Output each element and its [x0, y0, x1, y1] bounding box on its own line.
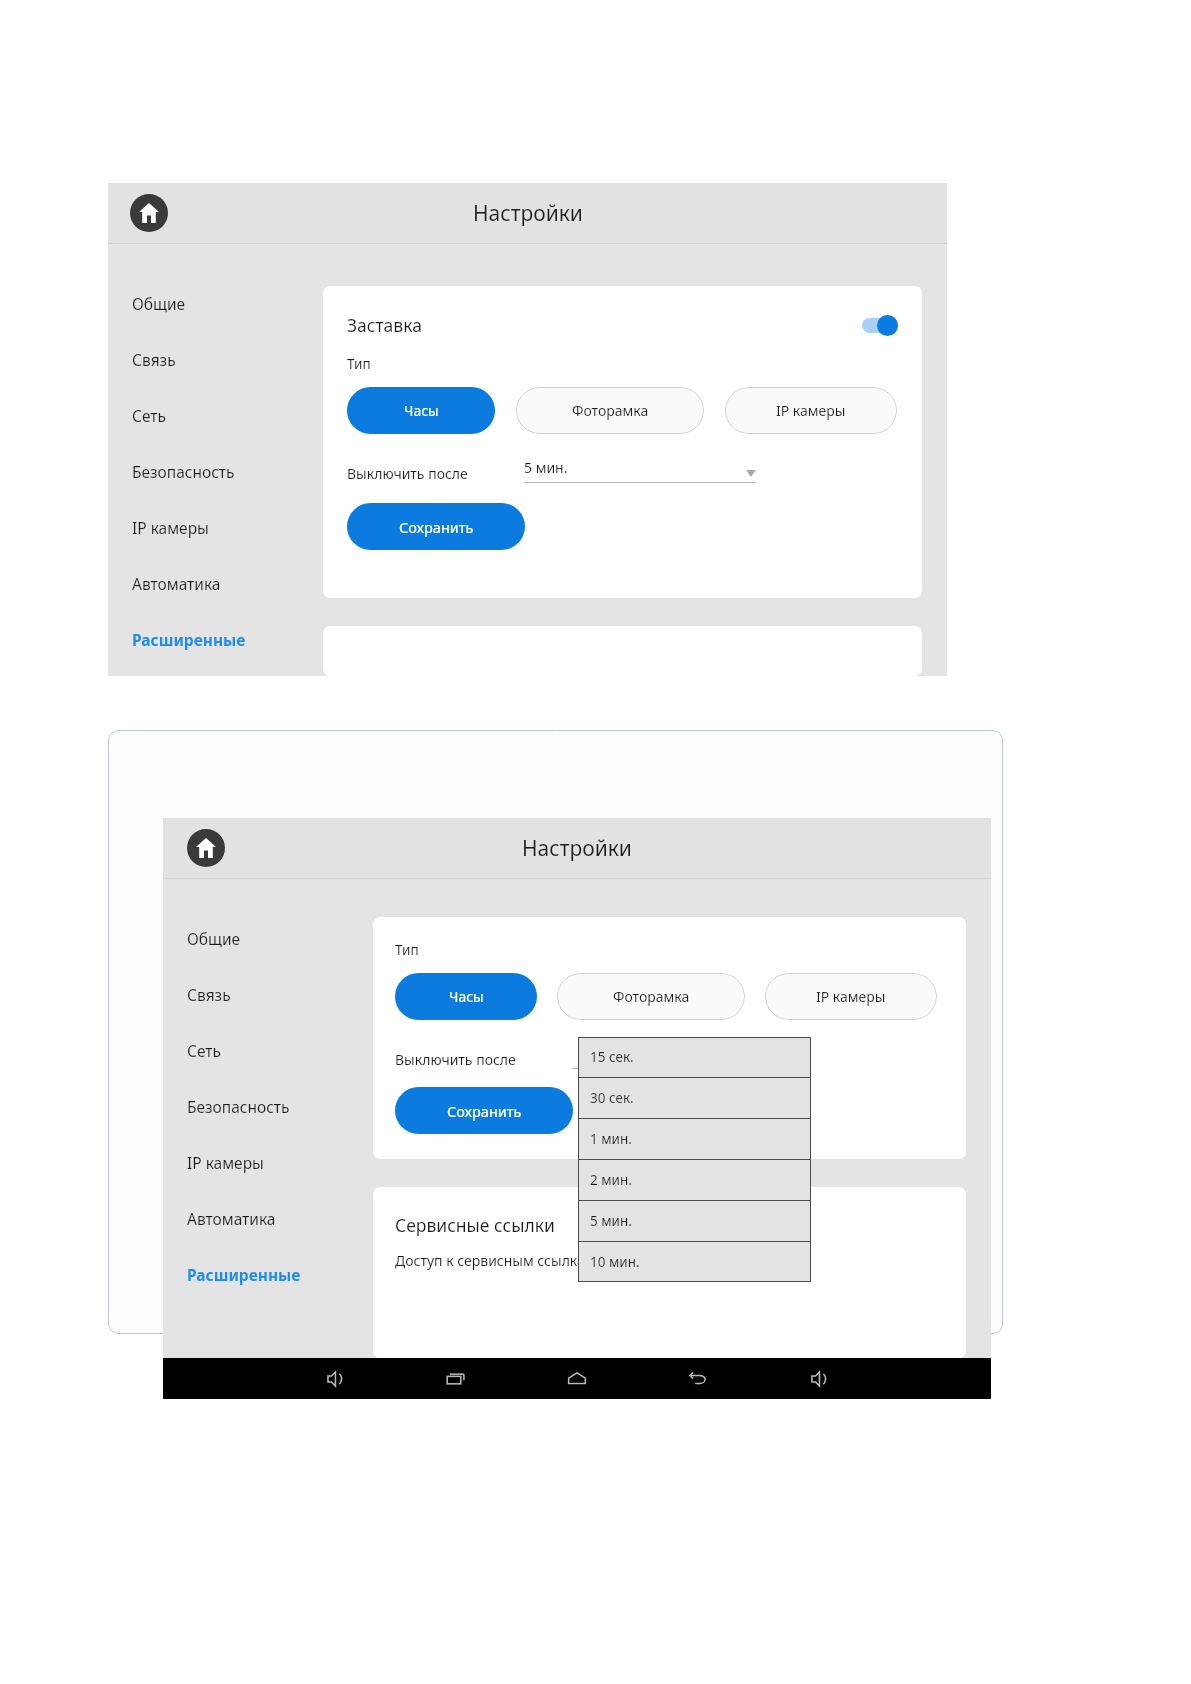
- staticText: Доступ к сервисным ссылкам: [395, 1251, 596, 1270]
- staticText: Тип: [347, 355, 371, 373]
- button[interactable]: Общие: [187, 928, 373, 949]
- staticText: Общие: [187, 928, 241, 949]
- button[interactable]: 2 мин.: [578, 1160, 811, 1200]
- button[interactable]: Toggle screensaver: [862, 315, 898, 336]
- staticText: [572, 1044, 794, 1063]
- staticText: Автоматика: [187, 1208, 276, 1229]
- staticText: 2 мин.: [590, 1171, 632, 1189]
- button[interactable]: Расширенные: [187, 1264, 373, 1285]
- button[interactable]: Фоторамка: [516, 387, 704, 434]
- staticText: 5 мин.: [590, 1212, 632, 1230]
- staticText: Сервисные ссылки: [395, 1213, 555, 1237]
- staticText: Безопасность: [187, 1096, 290, 1117]
- button[interactable]: Расширенные: [132, 629, 323, 650]
- button[interactable]: 15 сек.: [578, 1037, 811, 1077]
- button[interactable]: Recents: [434, 1358, 478, 1399]
- button[interactable]: 1 мин.: [578, 1119, 811, 1159]
- staticText: Часы: [449, 987, 484, 1006]
- button[interactable]: Volume up: [797, 1358, 841, 1399]
- staticText: Сеть: [187, 1040, 221, 1061]
- staticText: 30 сек.: [590, 1089, 634, 1107]
- button[interactable]: Back: [676, 1358, 720, 1399]
- button[interactable]: Сеть: [187, 1040, 373, 1061]
- button[interactable]: Home: [555, 1358, 599, 1399]
- button[interactable]: 5 мин.: [578, 1201, 811, 1241]
- button[interactable]: Часы: [395, 973, 537, 1020]
- button[interactable]: Сохранить: [395, 1087, 573, 1134]
- button[interactable]: Связь: [132, 349, 323, 370]
- staticText: Сеть: [132, 405, 166, 426]
- staticText: Общие: [132, 293, 186, 314]
- button[interactable]: IP камеры: [725, 387, 897, 434]
- staticText: Выключить после: [395, 1050, 516, 1069]
- button[interactable]: Home: [130, 194, 168, 232]
- staticText: Тип: [395, 941, 419, 959]
- button[interactable]: Общие: [132, 293, 323, 314]
- staticText: Фоторамка: [572, 401, 649, 420]
- staticText: Расширенные: [187, 1264, 301, 1285]
- button[interactable]: Volume down: [313, 1358, 357, 1399]
- button[interactable]: IP камеры: [765, 973, 937, 1020]
- staticText: IP камеры: [187, 1152, 264, 1173]
- button[interactable]: IP камеры: [187, 1152, 373, 1173]
- staticText: Настройки: [473, 199, 583, 228]
- button[interactable]: IP камеры: [132, 517, 323, 538]
- staticText: 15 сек.: [590, 1048, 634, 1066]
- button[interactable]: 30 сек.: [578, 1078, 811, 1118]
- staticText: Выключить после: [347, 464, 468, 483]
- staticText: Часы: [404, 401, 439, 420]
- staticText: Связь: [132, 349, 176, 370]
- staticText: Сохранить: [399, 517, 474, 537]
- staticText: Связь: [187, 984, 231, 1005]
- staticText: Сохранить: [447, 1101, 522, 1121]
- staticText: Безопасность: [132, 461, 235, 482]
- staticText: Фоторамка: [613, 987, 690, 1006]
- staticText: IP камеры: [776, 401, 846, 420]
- staticText: Автоматика: [132, 573, 221, 594]
- button[interactable]: Сеть: [132, 405, 323, 426]
- staticText: IP камеры: [816, 987, 886, 1006]
- staticText: IP камеры: [132, 517, 209, 538]
- staticText: 5 мин.: [524, 458, 746, 477]
- staticText: Настройки: [522, 834, 632, 863]
- button[interactable]: Связь: [187, 984, 373, 1005]
- button[interactable]: [572, 1044, 804, 1069]
- button[interactable]: Фоторамка: [557, 973, 745, 1020]
- staticText: 1 мин.: [590, 1130, 632, 1148]
- staticText: Заставка: [347, 313, 862, 337]
- staticText: 10 мин.: [590, 1253, 640, 1271]
- button[interactable]: 5 мин.: [524, 458, 756, 483]
- staticText: Расширенные: [132, 629, 246, 650]
- button[interactable]: 10 мин.: [578, 1242, 811, 1282]
- button[interactable]: Сохранить: [347, 503, 525, 550]
- button[interactable]: Автоматика: [187, 1208, 373, 1229]
- button[interactable]: Безопасность: [132, 461, 323, 482]
- button[interactable]: Часы: [347, 387, 495, 434]
- button[interactable]: Home: [187, 829, 225, 867]
- button[interactable]: Безопасность: [187, 1096, 373, 1117]
- button[interactable]: Автоматика: [132, 573, 323, 594]
